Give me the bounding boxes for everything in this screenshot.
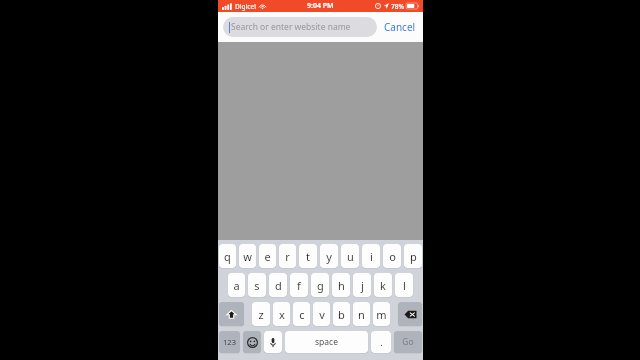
button[interactable]: l (395, 273, 413, 297)
button[interactable]: w (239, 244, 256, 268)
staticText: Go (402, 336, 414, 348)
button[interactable]: y (320, 244, 338, 268)
staticText: Search or enter website name (231, 21, 351, 33)
staticText: v (319, 307, 325, 322)
button[interactable]: a (228, 273, 245, 297)
staticText: h (338, 278, 345, 293)
button[interactable]: Search or enter website name (223, 17, 377, 37)
button[interactable]: d (269, 273, 287, 297)
button[interactable]: u (341, 244, 359, 268)
staticText: j (361, 278, 364, 293)
button[interactable]: 123 (219, 331, 240, 353)
staticText: Digicel (235, 2, 256, 11)
button[interactable]: Cancel (382, 17, 418, 37)
staticText: q (224, 249, 231, 264)
staticText: c (299, 307, 305, 322)
staticText: x (279, 307, 285, 322)
button[interactable]: v (313, 302, 330, 326)
button[interactable]: b (333, 302, 350, 326)
button[interactable]: n (353, 302, 370, 326)
staticText: y (326, 249, 332, 264)
staticText: m (376, 307, 387, 322)
button[interactable]: r (279, 244, 296, 268)
staticText: 78% (391, 2, 404, 11)
staticText: p (410, 249, 417, 264)
button[interactable]: c (293, 302, 310, 326)
staticText: r (285, 249, 290, 264)
staticText: w (243, 249, 252, 264)
staticText: 9:04 PM (307, 1, 334, 11)
staticText: t (306, 249, 310, 264)
button[interactable]: m (373, 302, 390, 326)
button[interactable]: h (332, 273, 350, 297)
button[interactable]: z (252, 302, 270, 326)
staticText: space (315, 336, 338, 348)
button[interactable]: p (404, 244, 422, 268)
button[interactable]: space (285, 331, 368, 353)
button[interactable]: k (374, 273, 392, 297)
staticText: o (389, 249, 396, 264)
staticText: g (317, 278, 324, 293)
staticText: Cancel (384, 20, 416, 34)
button[interactable]: i (362, 244, 380, 268)
staticText: n (358, 307, 365, 322)
button[interactable]: g (311, 273, 329, 297)
staticText: b (338, 307, 345, 322)
staticText: a (233, 278, 240, 293)
button[interactable]: . (371, 331, 391, 353)
staticText: i (370, 249, 373, 264)
staticText: s (254, 278, 260, 293)
button[interactable]: Go (394, 331, 422, 353)
button[interactable]: f (290, 273, 308, 297)
button[interactable]: Dictate (264, 331, 282, 353)
button[interactable]: Shift (219, 302, 244, 326)
button[interactable]: t (299, 244, 317, 268)
staticText: . (380, 336, 383, 348)
button[interactable]: o (383, 244, 401, 268)
button[interactable]: Emoji (243, 331, 261, 353)
button[interactable]: q (219, 244, 236, 268)
button[interactable]: e (259, 244, 276, 268)
button[interactable]: Backspace (398, 302, 422, 326)
staticText: 123 (223, 337, 236, 347)
staticText: e (264, 249, 271, 264)
button[interactable]: s (248, 273, 266, 297)
staticText: k (380, 278, 386, 293)
button[interactable]: j (353, 273, 371, 297)
staticText: l (403, 278, 406, 293)
staticText: f (297, 278, 301, 293)
button[interactable]: x (273, 302, 290, 326)
staticText: u (347, 249, 354, 264)
staticText: d (275, 278, 282, 293)
staticText: z (258, 307, 264, 322)
